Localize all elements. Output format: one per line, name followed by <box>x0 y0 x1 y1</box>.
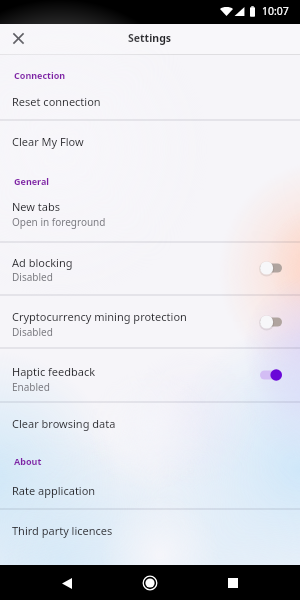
button[interactable]: Toggle off <box>254 259 284 277</box>
button[interactable]: Clear browsing data <box>0 402 300 444</box>
staticText: Reset connection <box>12 94 101 109</box>
button[interactable]: Ad blocking <box>0 242 300 294</box>
staticText: Haptic feedback <box>12 364 96 379</box>
button[interactable]: Rate application <box>0 470 300 509</box>
staticText: Third party licences <box>12 523 113 538</box>
button[interactable]: Close <box>5 25 31 51</box>
staticText: Settings <box>128 31 172 45</box>
staticText: Disabled <box>12 325 53 339</box>
button[interactable]: Home <box>136 569 164 597</box>
button[interactable]: Haptic feedback <box>0 349 300 401</box>
staticText: Enabled <box>12 380 50 394</box>
staticText: About <box>14 455 42 467</box>
staticText: Connection <box>14 69 66 81</box>
button[interactable]: Toggle off <box>254 313 284 331</box>
staticText: Disabled <box>12 270 53 284</box>
staticText: Cryptocurrency mining protection <box>12 309 187 324</box>
button[interactable]: Cryptocurrency mining protection <box>0 295 300 348</box>
staticText: New tabs <box>12 199 61 214</box>
staticText: Rate application <box>12 483 96 498</box>
staticText: 10:07 <box>262 4 289 18</box>
staticText: Clear My Flow <box>12 134 84 149</box>
staticText: General <box>14 175 50 187</box>
button[interactable]: Third party licences <box>0 510 300 551</box>
button[interactable]: New tabs <box>0 195 300 241</box>
button[interactable]: Clear My Flow <box>0 121 300 162</box>
button[interactable]: Reset connection <box>0 88 300 120</box>
staticText: Clear browsing data <box>12 416 116 431</box>
staticText: Open in foreground <box>12 215 106 229</box>
button[interactable]: Recent apps <box>219 569 247 597</box>
button[interactable]: Toggle on <box>254 366 284 384</box>
button[interactable]: Back <box>53 569 81 597</box>
staticText: Ad blocking <box>12 255 73 270</box>
